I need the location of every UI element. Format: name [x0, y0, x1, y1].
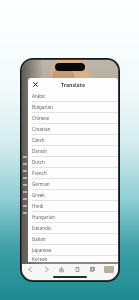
staticText: Japanese [32, 247, 52, 253]
button[interactable]: Danish [28, 146, 118, 157]
button[interactable]: Chinese [28, 113, 118, 124]
staticText: Korean [32, 256, 48, 262]
staticText: Icelandic [32, 225, 52, 231]
button[interactable]: Croatian [28, 124, 118, 135]
staticText: Arabic [32, 93, 46, 99]
staticText: Translate [61, 81, 86, 88]
button[interactable]: Share [57, 265, 66, 274]
staticText: Croatian [32, 126, 51, 132]
button[interactable]: Bulgarian [28, 102, 118, 113]
button[interactable]: French [28, 168, 118, 179]
button[interactable]: Italian [28, 234, 118, 245]
staticText: Italian [32, 236, 46, 242]
button[interactable]: Greek [28, 190, 118, 201]
button[interactable]: Close [31, 80, 40, 89]
button[interactable]: Hungarian [28, 212, 118, 223]
staticText: Czech [32, 137, 45, 143]
button[interactable]: Tabs [88, 265, 97, 274]
button[interactable]: Dutch [28, 157, 118, 168]
button[interactable]: Page thumbnail [104, 266, 114, 273]
button[interactable]: Icelandic [28, 223, 118, 234]
button[interactable]: German [28, 179, 118, 190]
button[interactable]: Japanese [28, 245, 118, 256]
button[interactable]: Bookmarks [73, 265, 82, 274]
staticText: Danish [32, 148, 47, 154]
button[interactable]: Arabic [28, 91, 118, 102]
button[interactable]: Czech [28, 135, 118, 146]
staticText: Hindi [32, 203, 44, 209]
staticText: Bulgarian [32, 104, 53, 110]
button[interactable]: Forward [42, 265, 51, 274]
staticText: German [32, 181, 50, 187]
staticText: Chinese [32, 115, 50, 121]
staticText: Hungarian [32, 214, 55, 220]
button[interactable]: Back [26, 265, 35, 274]
button[interactable]: Korean [28, 256, 118, 262]
staticText: Greek [32, 192, 45, 198]
staticText: French [32, 170, 47, 176]
staticText: Dutch [32, 159, 45, 165]
button[interactable]: Hindi [28, 201, 118, 212]
